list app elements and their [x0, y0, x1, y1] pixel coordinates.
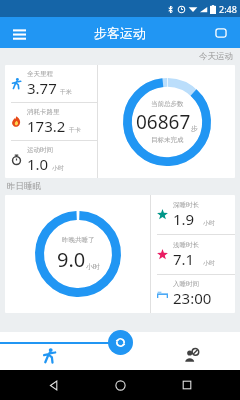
button[interactable]: 消耗卡路里 — [5, 103, 97, 140]
staticText: 3.77 — [27, 78, 57, 98]
staticText: 7.1 — [173, 249, 195, 269]
button[interactable]: Back — [39, 371, 67, 399]
staticText: 消耗卡路里 — [27, 108, 60, 116]
button[interactable]: 浅睡时长 — [151, 235, 235, 274]
button[interactable]: 全天里程 — [5, 65, 97, 102]
staticText: 步客运动 — [94, 25, 146, 41]
staticText: 昨日睡眠 — [7, 181, 41, 192]
button[interactable]: Recents — [173, 371, 201, 399]
button[interactable]: Overview — [210, 22, 232, 44]
staticText: 昨晚共睡了 — [62, 236, 95, 244]
staticText: 小时 — [203, 219, 215, 227]
staticText: 23:00 — [173, 288, 212, 308]
staticText: 9.0 — [57, 246, 86, 273]
staticText: 小时 — [203, 259, 215, 267]
button[interactable]: Sleep — [142, 332, 240, 370]
button[interactable]: 入睡时间 — [151, 275, 235, 313]
button[interactable]: Sync — [108, 330, 133, 355]
staticText: 运动时间 — [27, 146, 53, 154]
button[interactable]: Home — [106, 371, 134, 399]
staticText: 当前总步数 — [151, 100, 184, 108]
button[interactable]: 深睡时长 — [151, 195, 235, 234]
button[interactable]: Exercise — [0, 332, 98, 370]
staticText: 06867 — [136, 109, 191, 135]
staticText: 全天里程 — [27, 70, 53, 78]
button[interactable]: Menu — [8, 22, 30, 44]
staticText: 入睡时间 — [173, 280, 199, 288]
staticText: 千卡 — [69, 126, 81, 134]
staticText: 深睡时长 — [173, 201, 199, 209]
staticText: 浅睡时长 — [173, 241, 199, 249]
staticText: 目标未完成 — [151, 136, 184, 144]
staticText: 小时 — [52, 164, 64, 172]
staticText: 2:48 — [219, 3, 237, 15]
staticText: 步 — [191, 124, 198, 133]
staticText: 1.9 — [173, 209, 195, 229]
staticText: 千米 — [60, 88, 72, 96]
staticText: 小时 — [86, 262, 100, 271]
staticText: 173.2 — [27, 116, 66, 136]
staticText: 今天运动 — [199, 51, 233, 62]
staticText: 1.0 — [27, 154, 49, 174]
button[interactable]: 运动时间 — [5, 141, 97, 178]
